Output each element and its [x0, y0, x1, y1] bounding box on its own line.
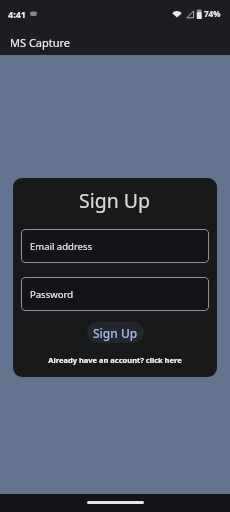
- staticText: MS Capture: [10, 35, 71, 50]
- staticText: Sign Up: [93, 325, 138, 341]
- staticText: Email address: [30, 240, 93, 253]
- staticText: 4:41: [8, 8, 26, 20]
- staticText: Password: [30, 288, 73, 301]
- button[interactable]: Email address: [21, 229, 209, 263]
- staticText: 74%: [204, 8, 221, 19]
- button[interactable]: Already have an account? click here: [13, 355, 217, 365]
- button[interactable]: Sign Up: [87, 322, 144, 343]
- staticText: Already have an account? click here: [48, 355, 182, 365]
- staticText: Sign Up: [79, 187, 151, 214]
- button[interactable]: Password: [21, 277, 209, 311]
